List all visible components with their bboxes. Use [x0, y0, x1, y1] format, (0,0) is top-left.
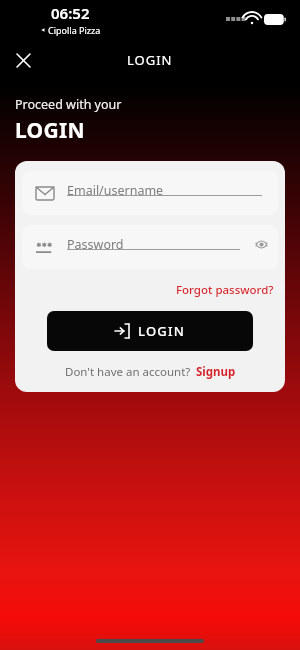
button[interactable]: Email/username — [22, 171, 278, 215]
staticText: 06:52 — [51, 3, 90, 23]
button[interactable]: Don't have an account? — [22, 364, 278, 380]
staticText: LOGIN — [127, 51, 173, 69]
staticText: Email/username — [67, 182, 164, 199]
button[interactable]: Password — [22, 225, 278, 269]
button[interactable]: Show password — [248, 231, 274, 257]
staticText: Forgot password? — [176, 282, 274, 298]
staticText: LOGIN — [138, 322, 186, 340]
staticText: Proceed with your — [15, 96, 122, 113]
button[interactable]: LOGIN — [47, 311, 253, 351]
button[interactable]: Forgot password? — [172, 279, 278, 301]
staticText: Don't have an account? — [65, 364, 191, 380]
staticText: Cipolla Pizza — [48, 24, 101, 36]
button[interactable]: Close — [8, 45, 38, 75]
staticText: LOGIN — [15, 116, 85, 145]
staticText: Password — [67, 236, 124, 253]
staticText: Signup — [196, 364, 236, 380]
